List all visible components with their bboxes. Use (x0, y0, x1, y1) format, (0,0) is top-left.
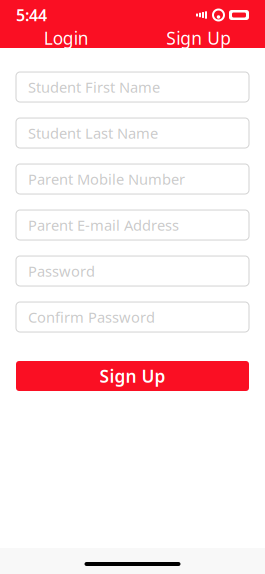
staticText: Login (44, 26, 89, 49)
staticText: Student First Name (28, 77, 160, 97)
staticText: Parent Mobile Number (28, 169, 185, 189)
button[interactable]: Login (0, 30, 132, 48)
staticText: Password (28, 261, 95, 281)
staticText: Confirm Password (28, 307, 155, 327)
button[interactable]: Sign Up (16, 361, 249, 391)
button[interactable]: Sign Up (132, 30, 265, 48)
staticText: Student Last Name (28, 123, 158, 143)
staticText: Sign Up (166, 26, 231, 49)
staticText: Parent E-mail Address (28, 215, 179, 235)
staticText: 5:44 (16, 4, 47, 26)
staticText: Sign Up (99, 364, 165, 387)
